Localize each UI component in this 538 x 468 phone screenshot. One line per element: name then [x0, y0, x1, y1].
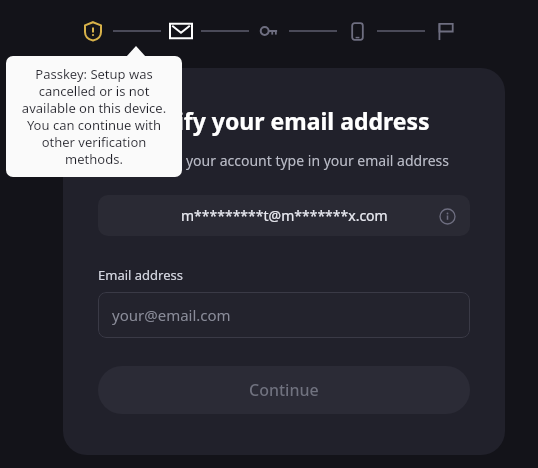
button[interactable]: Information [436, 205, 458, 227]
staticText: Passkey: Setup was cancelled or is not a… [16, 65, 172, 168]
button[interactable]: m*********t@m*******x.com [98, 195, 470, 236]
staticText: m*********t@m*******x.com [181, 206, 388, 225]
button[interactable]: Finish step [430, 16, 460, 46]
staticText: To secure your account type in your emai… [120, 151, 449, 170]
staticText: Continue [249, 379, 319, 401]
button[interactable]: Password step [254, 16, 284, 46]
staticText: Verify your email address [138, 105, 430, 136]
button[interactable]: Device step [342, 16, 372, 46]
button[interactable]: your@email.com [98, 292, 470, 338]
button[interactable]: Continue [98, 366, 470, 414]
button[interactable]: Email step [166, 16, 196, 46]
button[interactable]: Passkey step [78, 16, 108, 46]
staticText: your@email.com [112, 305, 231, 325]
staticText: Email address [98, 266, 183, 284]
